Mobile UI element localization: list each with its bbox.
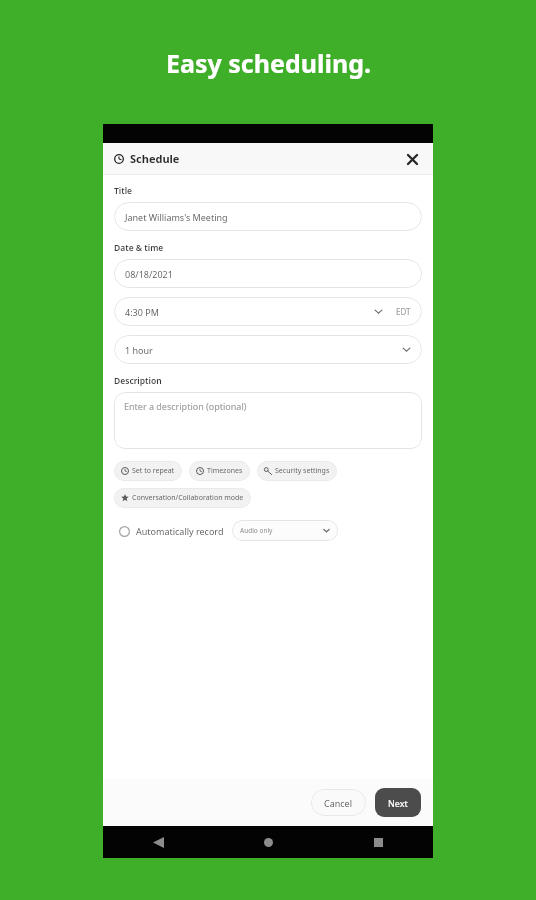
staticText: 1 hour	[125, 344, 153, 356]
button[interactable]: Timezones	[189, 461, 250, 481]
button[interactable]: Automatically record	[114, 521, 134, 541]
button[interactable]: 1 hour	[114, 335, 422, 364]
staticText: Audio only	[240, 526, 273, 535]
button[interactable]: Close	[402, 149, 422, 169]
staticText: Schedule	[130, 151, 180, 166]
button[interactable]: 4:30 PM	[114, 297, 422, 326]
button[interactable]: Janet Williams's Meeting	[114, 202, 422, 231]
button[interactable]: Conversation/Collaboration mode	[114, 488, 251, 508]
staticText: Janet Williams's Meeting	[125, 211, 228, 223]
button[interactable]: Cancel	[311, 789, 366, 816]
button[interactable]: Audio only	[232, 520, 338, 541]
staticText: Easy scheduling.	[166, 46, 371, 80]
staticText: Title	[114, 185, 133, 197]
staticText: Description	[114, 375, 162, 387]
staticText: Enter a description (optional)	[124, 400, 247, 412]
staticText: 08/18/2021	[125, 268, 173, 280]
button[interactable]: Next	[375, 788, 421, 817]
staticText: Date & time	[114, 242, 164, 254]
button[interactable]: Security settings	[257, 461, 337, 481]
button[interactable]: Back	[103, 826, 213, 858]
button[interactable]: Home	[213, 826, 323, 858]
staticText: EDT	[396, 306, 411, 317]
button[interactable]: Recents	[323, 826, 433, 858]
button[interactable]: Set to repeat	[114, 461, 182, 481]
staticText: 4:30 PM	[125, 306, 159, 318]
staticText: Set to repeat	[132, 466, 175, 476]
staticText: Next	[388, 797, 408, 809]
staticText: Automatically record	[136, 525, 224, 537]
staticText: Conversation/Collaboration mode	[132, 493, 244, 503]
staticText: Security settings	[275, 466, 330, 476]
button[interactable]: 08/18/2021	[114, 259, 422, 288]
staticText: Timezones	[207, 466, 243, 476]
button[interactable]: Enter a description (optional)	[114, 392, 422, 449]
staticText: Cancel	[324, 797, 353, 809]
